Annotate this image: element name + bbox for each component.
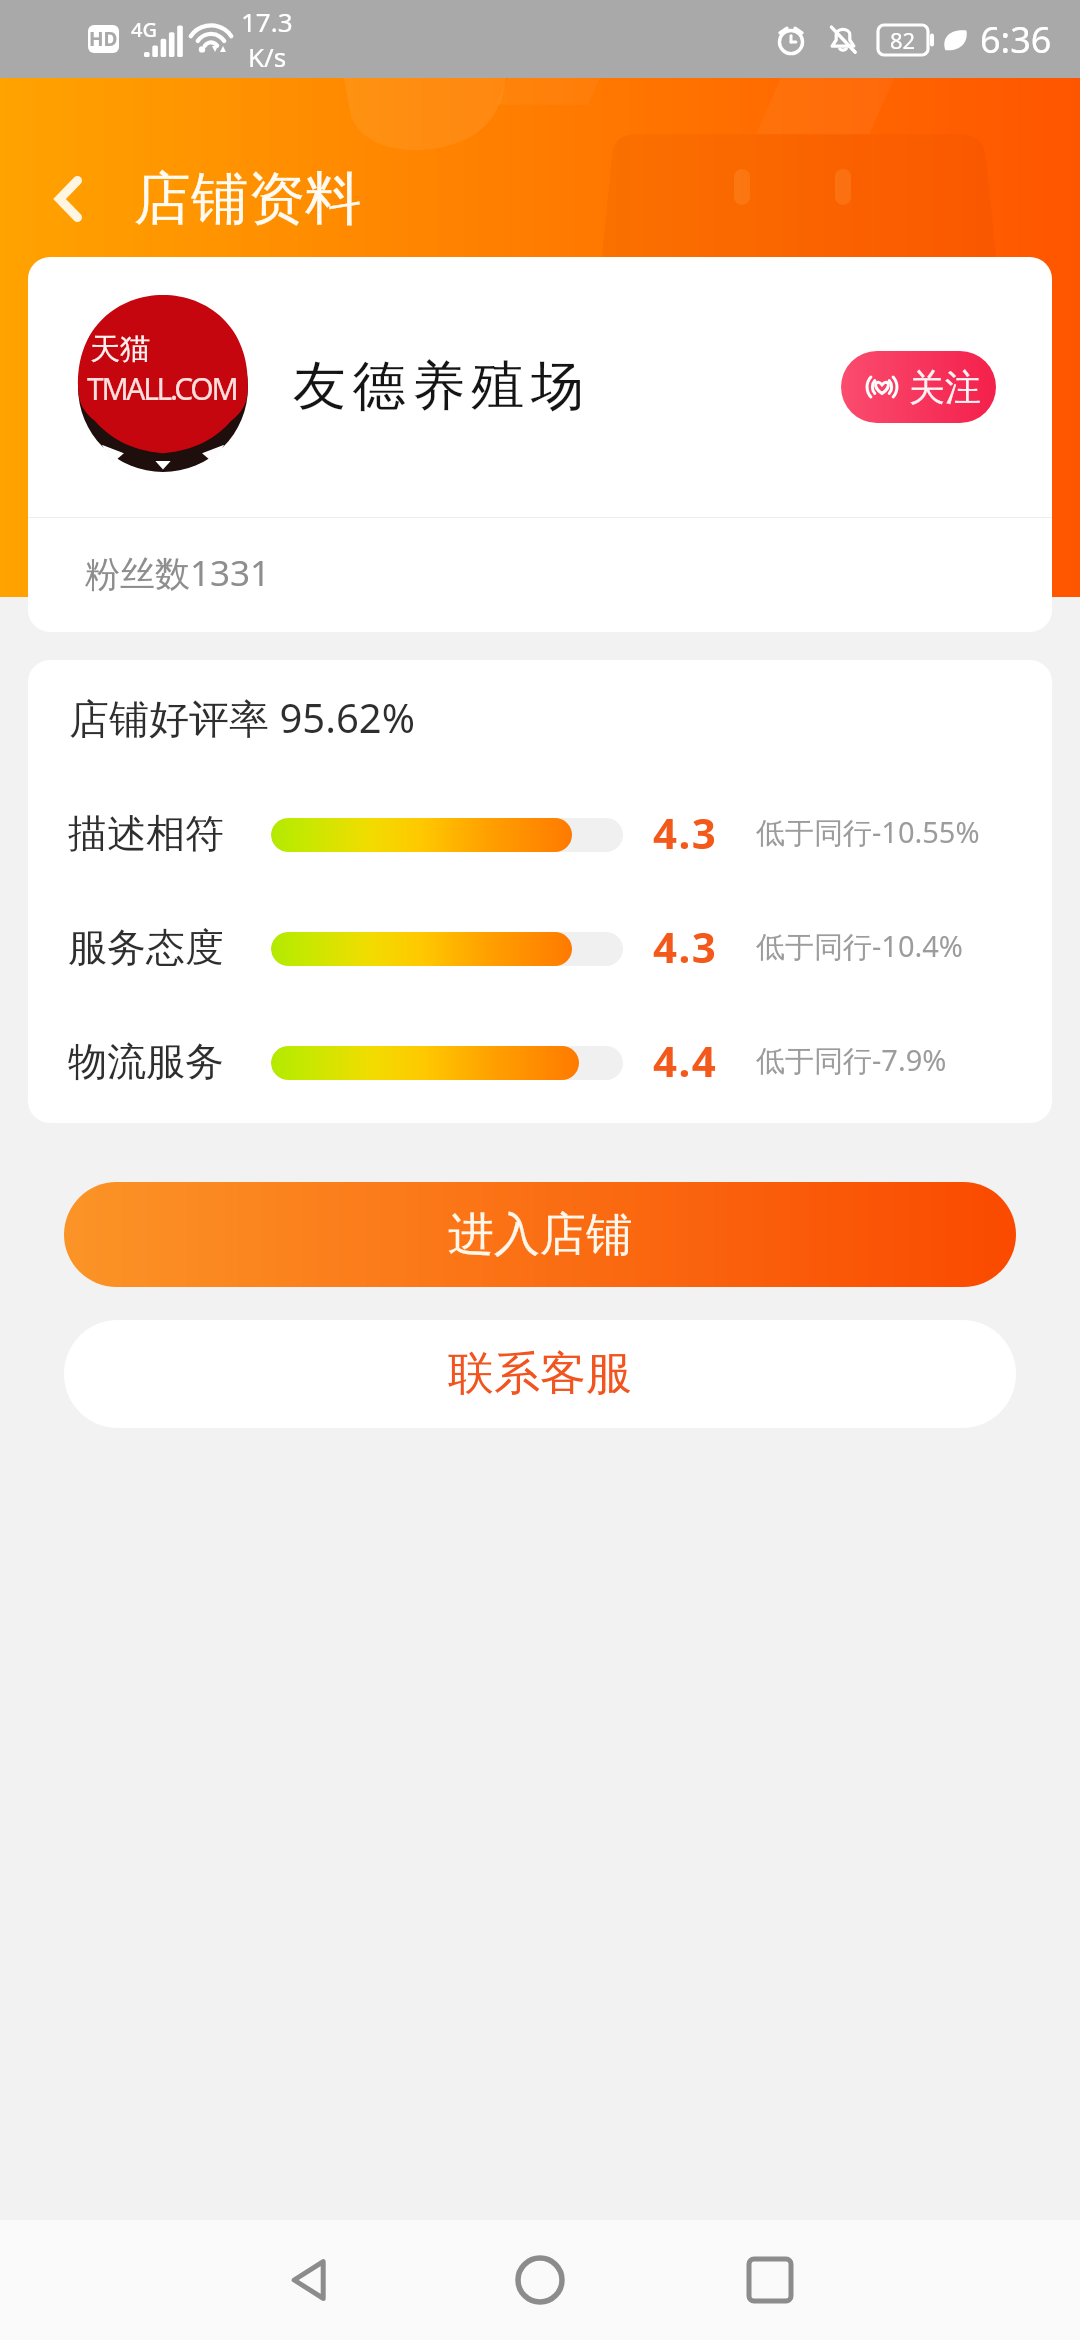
button[interactable]: 联系客服 <box>64 1320 1016 1428</box>
staticText: 低于同行-7.9% <box>756 1040 947 1080</box>
staticText: 低于同行-10.4% <box>756 926 963 966</box>
button[interactable]: Home <box>425 2220 655 2340</box>
button[interactable]: Recents <box>655 2220 885 2340</box>
staticText: 82 <box>890 25 916 55</box>
staticText: 粉丝数1331 <box>85 549 271 597</box>
button[interactable]: Back <box>23 154 113 244</box>
staticText: HD <box>89 26 118 52</box>
staticText: 描述相符 <box>68 809 224 858</box>
staticText: 店铺资料 <box>134 163 362 235</box>
staticText: TMALL.COM <box>87 368 237 409</box>
staticText: 低于同行-10.55% <box>756 812 980 852</box>
staticText: 联系客服 <box>448 1345 632 1403</box>
staticText: 4.3 <box>653 804 718 861</box>
staticText: 店铺好评率 95.62% <box>69 690 415 745</box>
staticText: 服务态度 <box>68 923 224 972</box>
staticText: 友德养殖场 <box>293 353 591 420</box>
staticText: K/s <box>248 39 287 74</box>
button[interactable]: Back <box>195 2220 425 2340</box>
staticText: 4G <box>131 16 157 43</box>
button[interactable]: 进入店铺 <box>64 1182 1016 1287</box>
staticText: 天猫 <box>90 330 150 368</box>
staticText: 17.3 <box>241 4 293 39</box>
staticText: 6:36 <box>980 15 1052 64</box>
staticText: 4.3 <box>653 918 718 975</box>
button[interactable]: 关注 <box>841 351 996 423</box>
staticText: 进入店铺 <box>448 1206 632 1264</box>
staticText: 关注 <box>909 365 981 410</box>
staticText: 物流服务 <box>68 1037 224 1086</box>
staticText: 4.4 <box>653 1032 718 1089</box>
